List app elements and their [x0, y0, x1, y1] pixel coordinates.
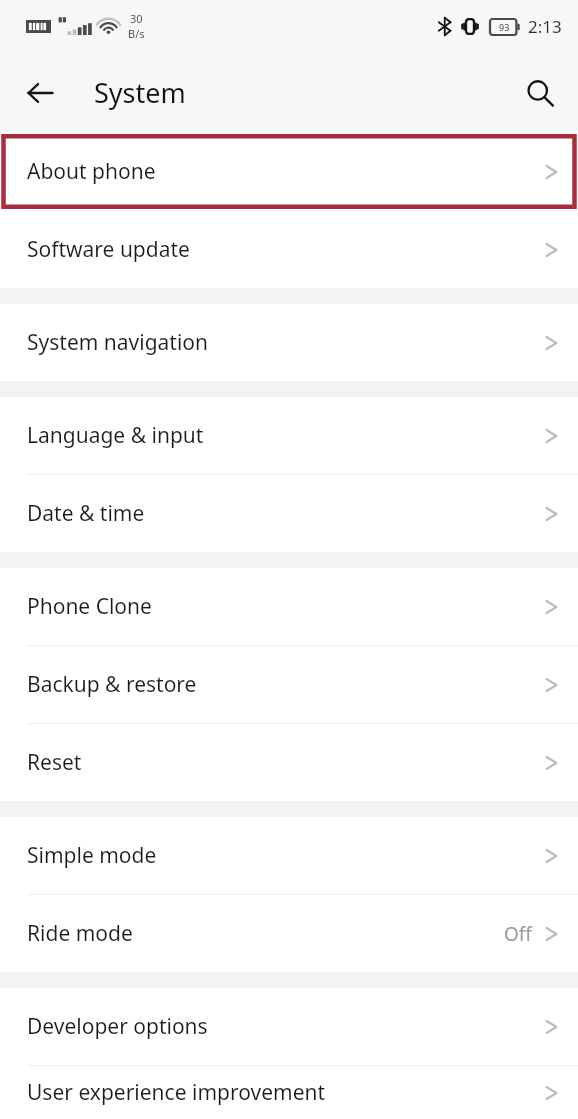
- button[interactable]: Back: [14, 67, 66, 119]
- button[interactable]: Search: [514, 67, 566, 119]
- staticText: System navigation: [27, 328, 209, 357]
- staticText: Software update: [27, 235, 190, 264]
- staticText: Language & input: [27, 421, 204, 450]
- staticText: 2:13: [528, 15, 562, 38]
- button[interactable]: User experience improvement: [0, 1066, 578, 1119]
- button[interactable]: Reset: [0, 724, 578, 801]
- button[interactable]: Language & input: [0, 397, 578, 474]
- button[interactable]: About phone: [0, 133, 578, 210]
- staticText: Date & time: [27, 499, 145, 528]
- button[interactable]: Backup & restore: [0, 646, 578, 723]
- button[interactable]: Phone Clone: [0, 568, 578, 645]
- button[interactable]: Simple mode: [0, 817, 578, 894]
- staticText: Off: [504, 921, 532, 947]
- staticText: Backup & restore: [27, 670, 197, 699]
- button[interactable]: Developer options: [0, 988, 578, 1065]
- staticText: 30: [130, 11, 143, 26]
- button[interactable]: Date & time: [0, 475, 578, 552]
- staticText: Phone Clone: [27, 592, 152, 621]
- staticText: System: [94, 74, 186, 111]
- staticText: Simple mode: [27, 841, 157, 870]
- staticText: Ride mode: [27, 919, 133, 948]
- staticText: 93: [499, 21, 510, 33]
- staticText: User experience improvement: [27, 1078, 326, 1107]
- button[interactable]: Ride mode: [0, 895, 578, 972]
- staticText: B/s: [128, 26, 145, 41]
- staticText: Developer options: [27, 1012, 208, 1041]
- staticText: About phone: [27, 157, 156, 186]
- staticText: Reset: [27, 748, 82, 777]
- button[interactable]: Software update: [0, 211, 578, 288]
- button[interactable]: System navigation: [0, 304, 578, 381]
